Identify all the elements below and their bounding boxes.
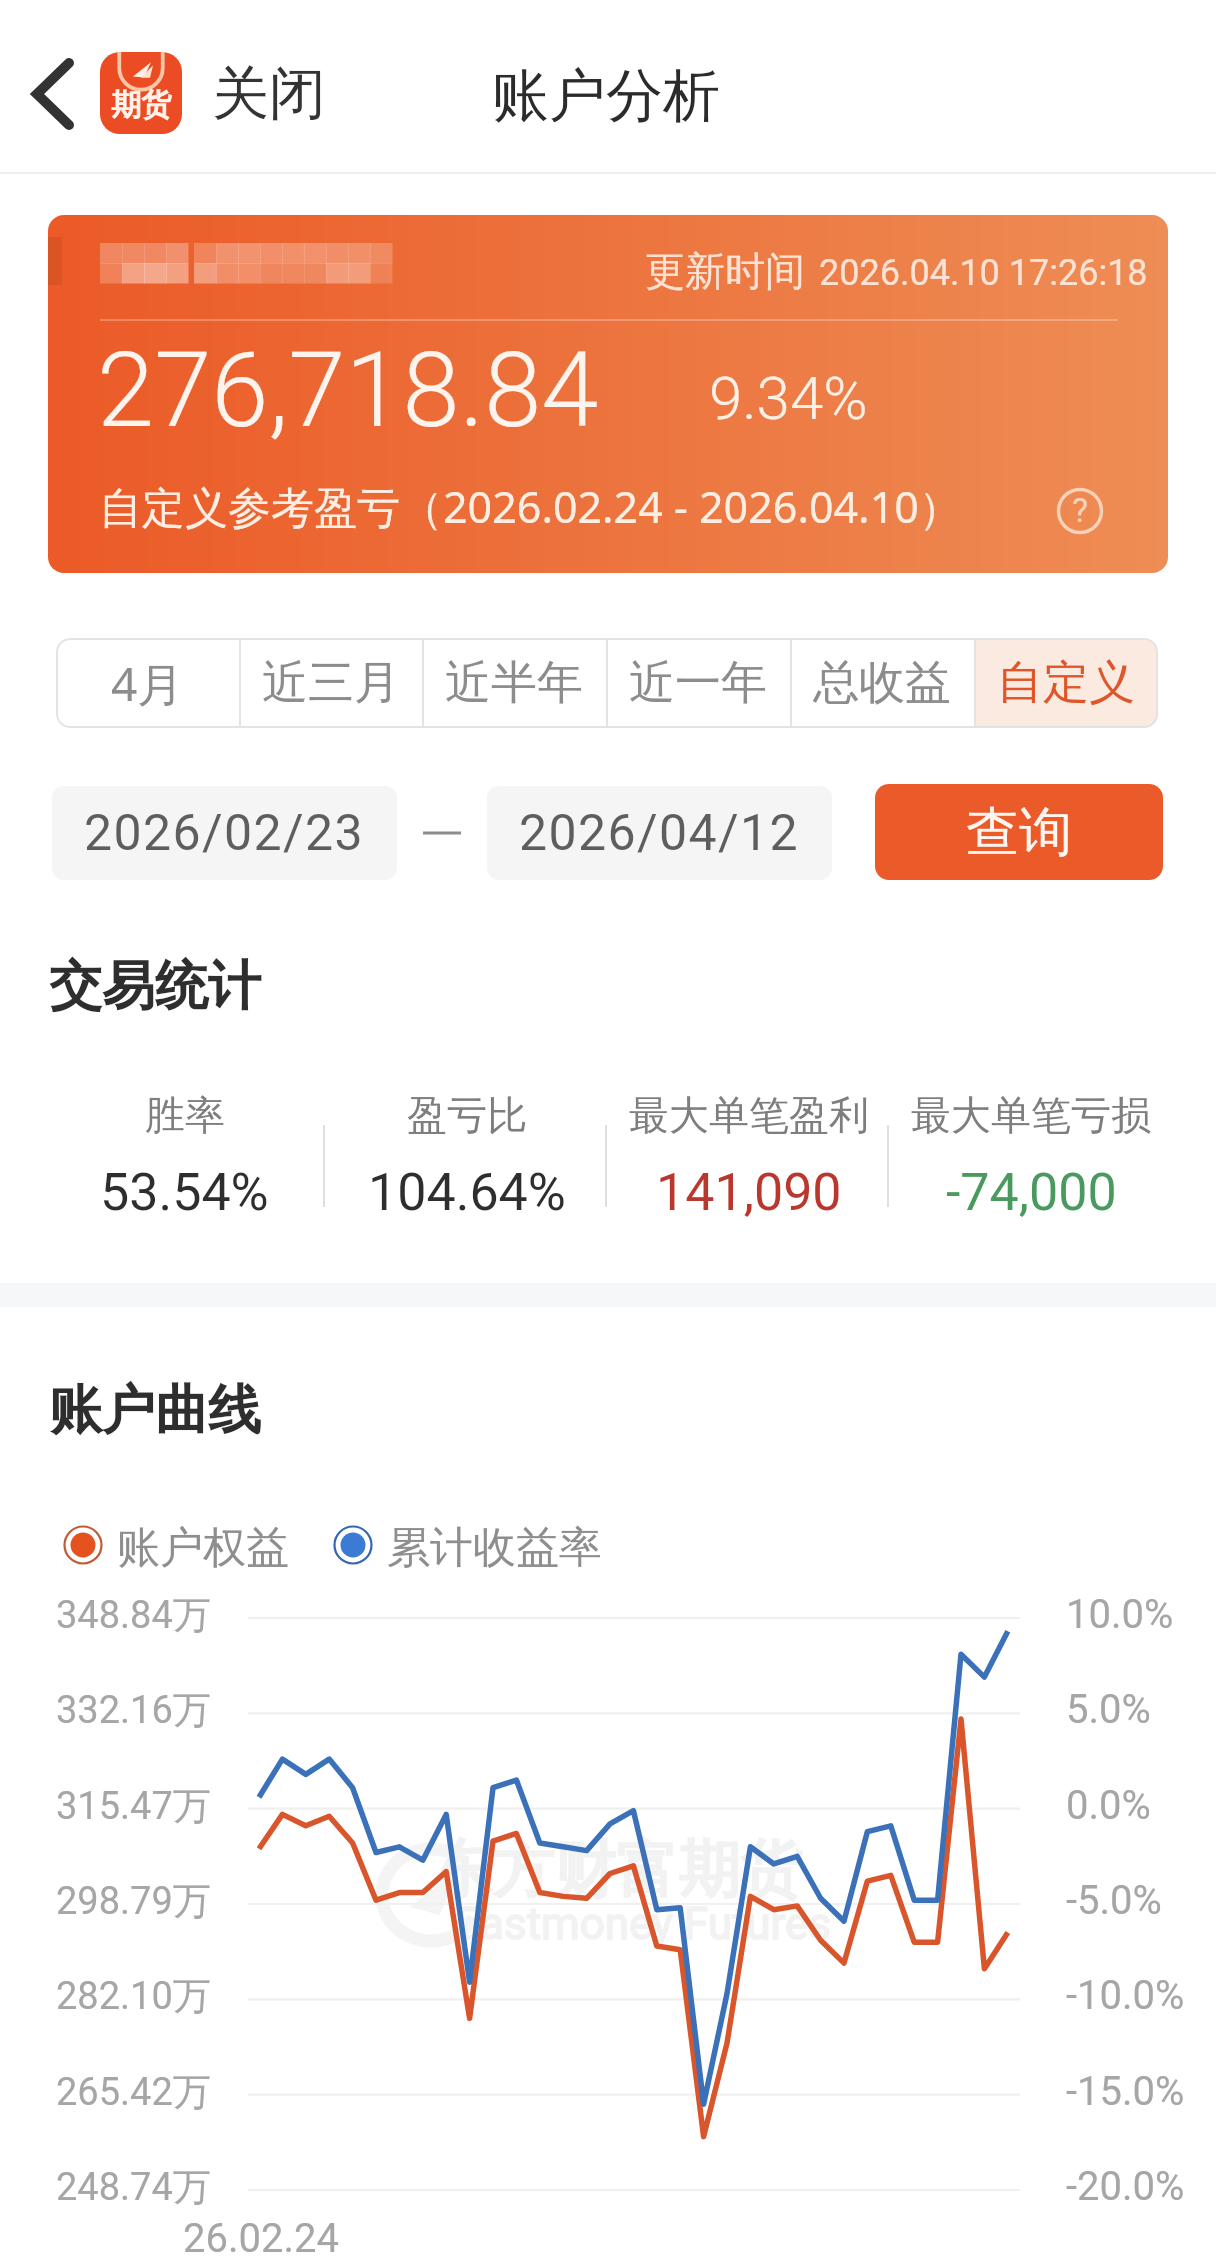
staticText: 4月 [111, 652, 184, 715]
button[interactable]: 自定义 [974, 638, 1158, 728]
staticText: -5.0% [1066, 1877, 1162, 1924]
staticText: 265.42万 [56, 2068, 211, 2116]
staticText: 更新时间 [645, 246, 805, 296]
staticText: 2026/04/12 [519, 804, 800, 863]
staticText: 最大单笔盈利 [629, 1090, 869, 1140]
staticText: 0.0% [1066, 1782, 1151, 1829]
staticText: 315.47万 [56, 1782, 211, 1830]
staticText: -74,000 [946, 1162, 1117, 1223]
staticText: 账户分析 [492, 60, 720, 132]
staticText: 期货 [111, 86, 171, 124]
staticText: 总收益 [813, 654, 951, 712]
staticText: 2026/02/23 [84, 804, 365, 863]
button[interactable]: Help [1056, 487, 1104, 535]
staticText: 276,718.84 [97, 330, 599, 451]
staticText: -20.0% [1066, 2163, 1185, 2210]
button[interactable]: 关闭 [208, 54, 330, 134]
button[interactable]: 近三月 [239, 638, 422, 728]
staticText: 自定义参考盈亏（2026.02.24 - 2026.04.10） [99, 477, 962, 536]
staticText: 交易统计 [49, 953, 261, 1020]
staticText: 248.74万 [56, 2163, 211, 2211]
button[interactable]: 2026/02/23 [52, 786, 397, 880]
button[interactable]: 近半年 [422, 638, 606, 728]
staticText: -10.0% [1066, 1972, 1185, 2019]
staticText: -15.0% [1066, 2068, 1185, 2115]
staticText: 查询 [966, 799, 1072, 866]
staticText: 332.16万 [56, 1686, 211, 1734]
staticText: 累计收益率 [387, 1521, 602, 1569]
staticText: 账户曲线 [49, 1377, 261, 1444]
staticText: 账户权益 [117, 1521, 289, 1569]
staticText: 2026.04.10 17:26:18 [819, 252, 1148, 294]
staticText: 104.64% [368, 1162, 566, 1223]
staticText: 自定义 [997, 654, 1135, 712]
button[interactable]: 查询 [875, 784, 1163, 880]
staticText: 近半年 [445, 654, 583, 712]
staticText: 东方财富期货 [430, 1831, 802, 1909]
staticText: 最大单笔亏损 [911, 1090, 1151, 1140]
staticText: 胜率 [145, 1090, 225, 1140]
button[interactable]: 近一年 [606, 638, 790, 728]
staticText: 近三月 [262, 654, 400, 712]
staticText: 348.84万 [56, 1591, 211, 1639]
button[interactable]: 4月 [56, 638, 239, 728]
staticText: 9.34% [709, 363, 868, 433]
button[interactable]: Back [10, 49, 96, 139]
staticText: 10.0% [1066, 1591, 1174, 1638]
staticText: 141,090 [656, 1162, 842, 1223]
staticText: 关闭 [212, 58, 326, 130]
staticText: 53.54% [100, 1162, 269, 1223]
staticText: 282.10万 [56, 1972, 211, 2020]
button[interactable]: 2026/04/12 [487, 786, 832, 880]
staticText: Eastmoney Futures [455, 1898, 832, 1950]
staticText: 298.79万 [56, 1877, 211, 1925]
staticText: 近一年 [629, 654, 767, 712]
button[interactable]: 总收益 [790, 638, 974, 728]
staticText: ? [1072, 490, 1089, 530]
staticText: 26.02.24 [183, 2215, 339, 2262]
staticText: 5.0% [1066, 1686, 1151, 1733]
staticText: 盈亏比 [407, 1090, 527, 1140]
